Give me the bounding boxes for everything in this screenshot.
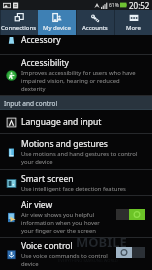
button[interactable]: Smart screen xyxy=(0,170,152,195)
button[interactable]: Connections xyxy=(0,10,38,35)
staticText: Accounts xyxy=(82,24,108,32)
button[interactable]: Air view xyxy=(0,196,152,237)
staticText: information when you hover xyxy=(21,219,100,227)
staticText: Air view xyxy=(21,199,53,211)
staticText: EVERYTHING SAMSUNG WORLD xyxy=(58,258,118,263)
staticText: 20:52 xyxy=(129,0,150,10)
button[interactable]: Voice control xyxy=(0,238,152,270)
staticText: device xyxy=(21,260,39,268)
staticText: My device xyxy=(43,24,71,32)
staticText: MOBILE xyxy=(76,233,127,251)
staticText: your finger over the screen xyxy=(21,227,96,235)
staticText: Improves accessibility for users who hav… xyxy=(21,69,136,77)
staticText: Accessibility xyxy=(21,57,69,69)
staticText: Accessory xyxy=(21,34,61,46)
staticText: Motions and gestures xyxy=(21,138,108,150)
staticText: your device xyxy=(21,158,53,166)
button[interactable]: Motions and gestures xyxy=(0,134,152,169)
staticText: Air view shows you helpful xyxy=(21,211,95,219)
button[interactable]: More xyxy=(114,10,152,35)
staticText: dexterity xyxy=(21,85,46,93)
button[interactable]: Accounts xyxy=(76,10,114,35)
staticText: Language and input xyxy=(21,116,102,128)
staticText: Use intelligent face detection features xyxy=(21,185,126,193)
staticText: Input and control xyxy=(4,99,58,108)
staticText: Smart screen xyxy=(21,173,74,185)
staticText: Use motions and hand gestures to control xyxy=(21,150,138,158)
staticText: Connections xyxy=(1,24,37,32)
button[interactable]: My device xyxy=(38,10,76,35)
staticText: More xyxy=(126,24,141,32)
button[interactable]: Switch on xyxy=(116,209,145,220)
staticText: 61% xyxy=(109,2,119,9)
button[interactable]: Switch off xyxy=(116,247,145,258)
button[interactable]: Accessory xyxy=(0,35,152,54)
staticText: Use voice commands to control xyxy=(21,252,108,260)
button[interactable]: Language and input xyxy=(0,110,152,133)
staticText: impaired vision, hearing or reduced xyxy=(21,77,120,85)
button[interactable]: Accessibility xyxy=(0,55,152,95)
staticText: Voice control xyxy=(21,240,73,252)
